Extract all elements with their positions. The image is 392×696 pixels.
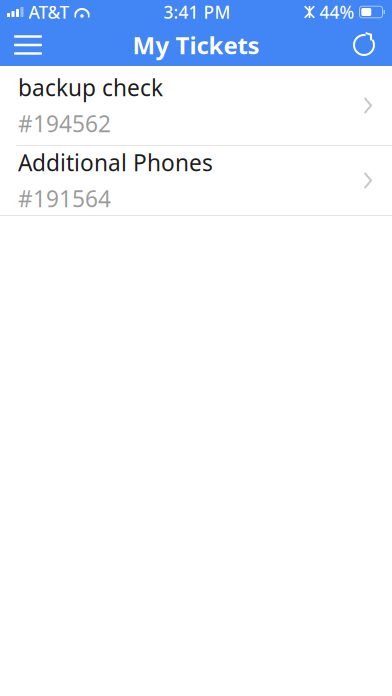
staticText: #194562	[18, 108, 111, 139]
staticText: My Tickets	[132, 29, 259, 61]
button[interactable]: backup check	[0, 66, 392, 145]
staticText: AT&T	[28, 0, 69, 23]
staticText: 3:41 PM	[163, 0, 230, 23]
button[interactable]: Menu	[4, 24, 52, 66]
staticText: Additional Phones	[18, 147, 213, 177]
staticText: #191564	[18, 183, 111, 214]
staticText: backup check	[18, 72, 163, 102]
button[interactable]: Additional Phones	[0, 146, 392, 215]
button[interactable]: Refresh	[340, 24, 388, 66]
staticText: 44%	[319, 0, 354, 23]
